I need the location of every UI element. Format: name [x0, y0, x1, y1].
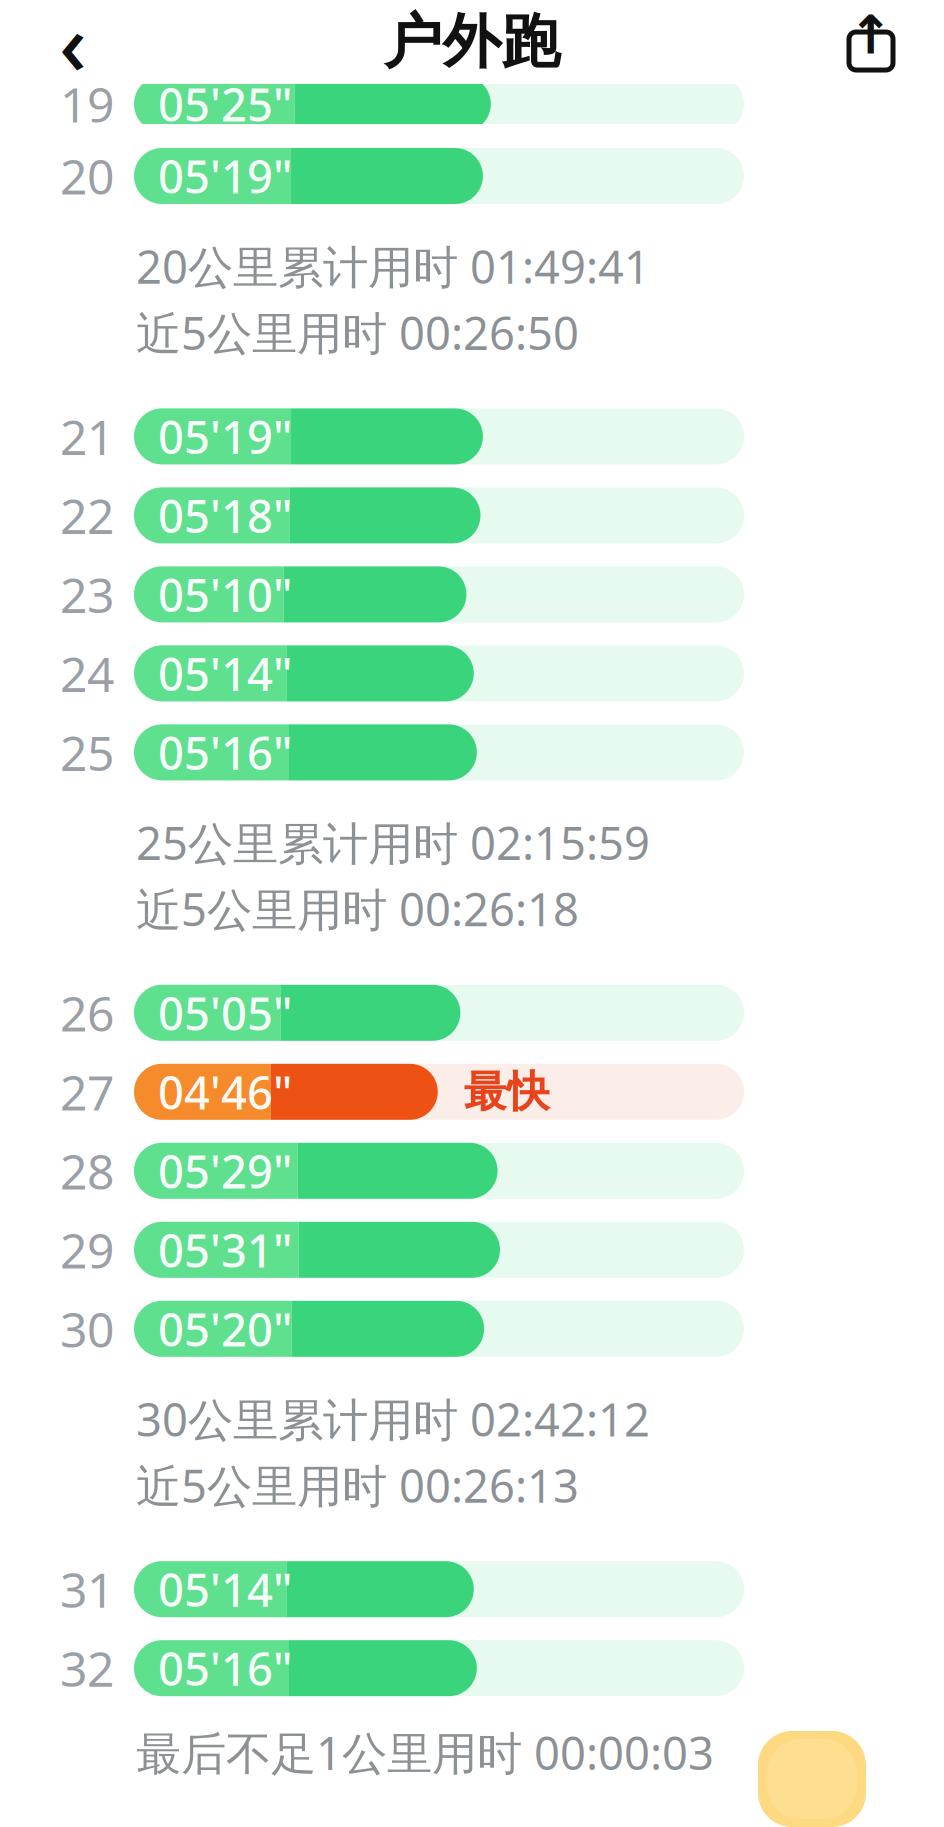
button[interactable]: 27 — [0, 1064, 944, 1120]
button[interactable]: 31 — [0, 1561, 944, 1617]
staticText: 05'14" — [158, 1559, 292, 1619]
staticText: 05'14" — [158, 643, 292, 703]
staticText: 29 — [60, 1218, 114, 1282]
staticText: 22 — [60, 483, 114, 547]
button[interactable]: 26 — [0, 985, 944, 1041]
staticText: 24 — [60, 641, 114, 705]
staticText: 04'46" — [158, 1062, 292, 1122]
staticText: ‹ — [59, 0, 87, 99]
staticText: 21 — [60, 404, 114, 468]
staticText: 05'25" — [158, 74, 292, 134]
staticText: 27 — [60, 1060, 114, 1124]
staticText: 05'10" — [158, 564, 292, 624]
button[interactable]: 返回 — [28, 0, 118, 84]
staticText: 05'05" — [158, 983, 292, 1043]
staticText: 最后不足1公里用时 00:00:03 — [136, 1722, 714, 1782]
button[interactable]: 29 — [0, 1222, 944, 1278]
button[interactable]: 32 — [0, 1640, 944, 1696]
staticText: 26 — [60, 981, 114, 1045]
staticText: 19 — [60, 72, 114, 136]
staticText: 30 — [60, 1297, 114, 1361]
staticText: 25公里累计用时 02:15:59 — [136, 812, 650, 873]
staticText: 05'16" — [158, 1638, 292, 1698]
button[interactable]: 21 — [0, 408, 944, 464]
staticText: 05'29" — [158, 1141, 292, 1201]
staticText: 05'20" — [158, 1299, 292, 1359]
button[interactable]: 22 — [0, 487, 944, 543]
staticText: 05'18" — [158, 485, 292, 545]
button[interactable]: 分享 — [826, 0, 916, 84]
staticText: 05'19" — [158, 146, 292, 206]
staticText: 30公里累计用时 02:42:12 — [136, 1389, 650, 1449]
staticText: 31 — [60, 1557, 114, 1621]
button[interactable]: 28 — [0, 1143, 944, 1199]
staticText: 20公里累计用时 01:49:41 — [136, 236, 650, 296]
staticText: 05'31" — [158, 1220, 292, 1280]
staticText: 23 — [60, 562, 114, 626]
staticText: 28 — [60, 1139, 114, 1203]
staticText: 25 — [60, 720, 114, 784]
staticText: 05'16" — [158, 722, 292, 782]
button[interactable]: 19 — [0, 76, 944, 132]
staticText: 户外跑 — [383, 6, 560, 78]
staticText: 近5公里用时 00:26:13 — [136, 1455, 579, 1515]
staticText: 最快 — [464, 1066, 550, 1118]
button[interactable]: 24 — [0, 645, 944, 701]
staticText: ↑ — [848, 5, 893, 65]
button[interactable]: 23 — [0, 566, 944, 622]
button[interactable]: 30 — [0, 1301, 944, 1357]
button[interactable]: 25 — [0, 724, 944, 780]
staticText: 32 — [60, 1636, 114, 1700]
button[interactable]: 20 — [0, 148, 944, 204]
staticText: 20 — [60, 144, 114, 208]
staticText: 近5公里用时 00:26:18 — [136, 879, 579, 939]
staticText: 近5公里用时 00:26:50 — [136, 302, 579, 362]
staticText: 05'19" — [158, 406, 292, 466]
